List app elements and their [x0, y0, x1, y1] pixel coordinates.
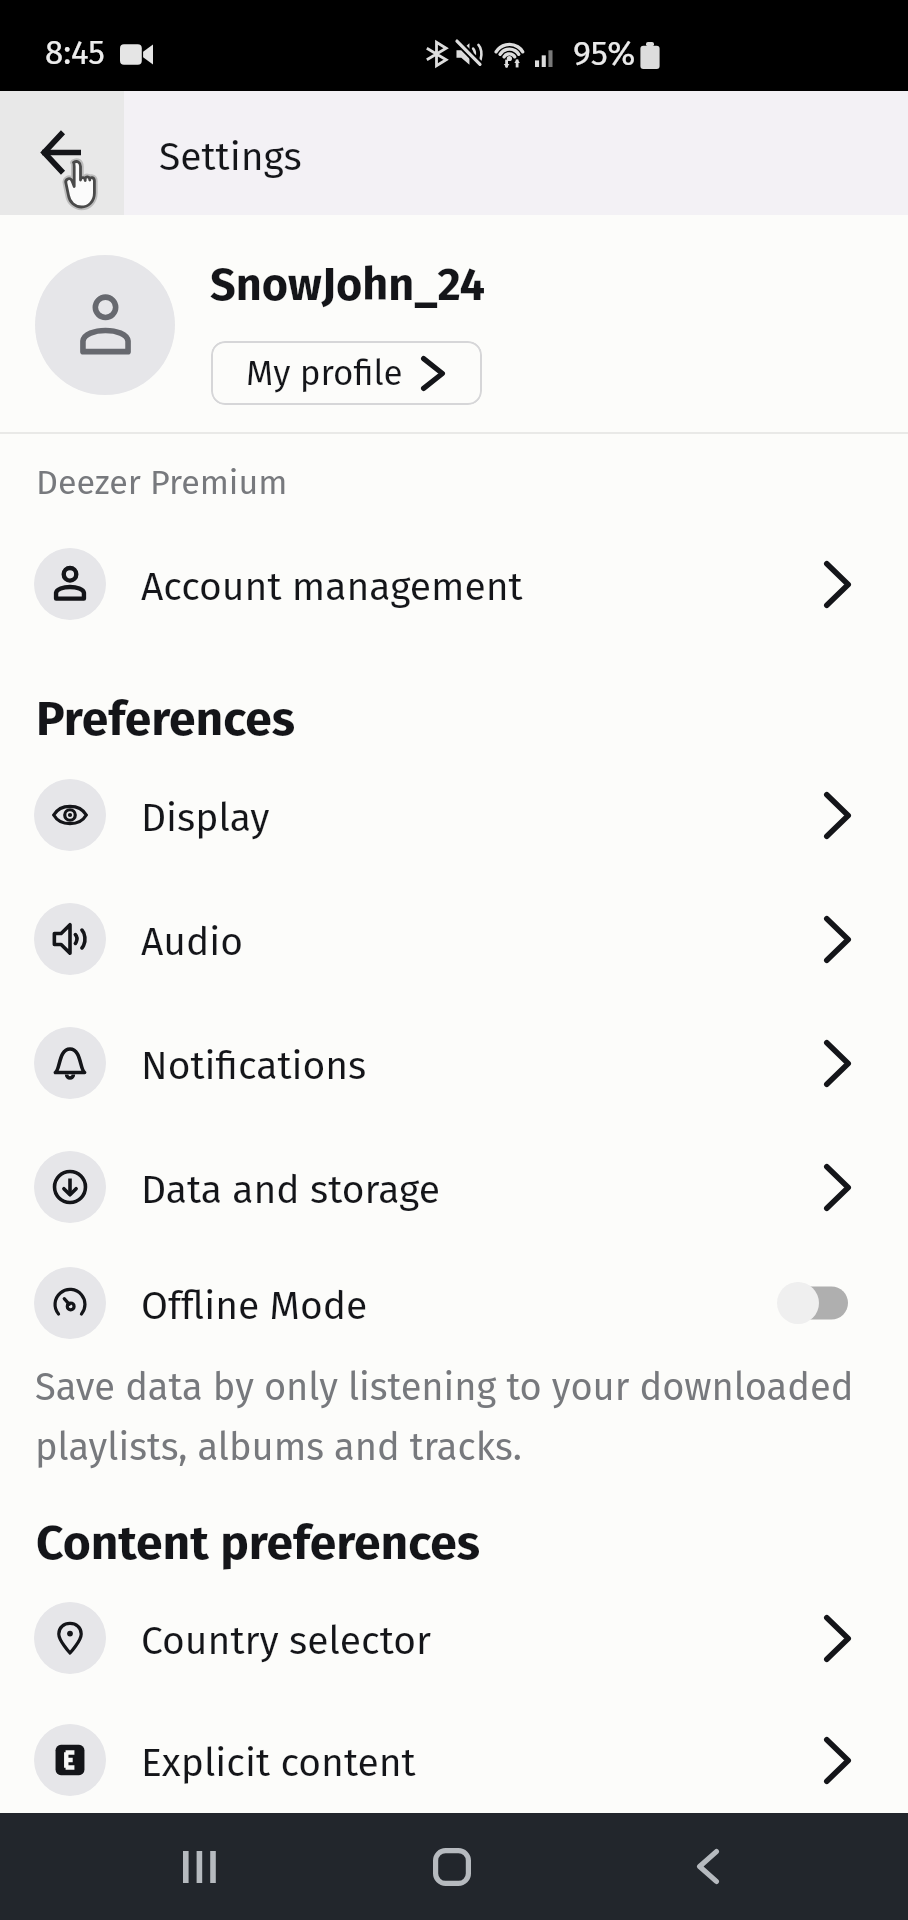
button[interactable]: Offline Mode: [0, 1241, 908, 1365]
staticText: Notifications: [141, 1043, 367, 1090]
button[interactable]: Account management: [0, 522, 908, 646]
staticText: Audio: [141, 919, 244, 966]
button[interactable]: Audio: [0, 877, 908, 1001]
button[interactable]: My profile: [211, 341, 482, 405]
button[interactable]: Display: [0, 753, 908, 877]
staticText: Content preferences: [36, 1514, 480, 1572]
staticText: 95%: [573, 33, 636, 74]
button[interactable]: Explicit content: [0, 1698, 908, 1822]
staticText: My profile: [246, 352, 403, 394]
staticText: Preferences: [36, 690, 295, 748]
staticText: Account management: [141, 564, 523, 611]
button[interactable]: Notifications: [0, 1001, 908, 1125]
staticText: Offline Mode: [141, 1283, 368, 1330]
staticText: Display: [141, 795, 270, 842]
staticText: Save data by only listening to your down…: [35, 1364, 854, 1470]
staticText: Deezer Premium: [36, 462, 288, 503]
staticText: Data and storage: [141, 1167, 440, 1214]
button[interactable]: Offline Mode toggle: [770, 1275, 858, 1331]
button[interactable]: Back: [652, 1813, 764, 1920]
staticText: 8:45: [45, 33, 105, 73]
button[interactable]: Data and storage: [0, 1125, 908, 1249]
button[interactable]: Home: [396, 1813, 508, 1920]
button[interactable]: Back: [0, 91, 124, 215]
button[interactable]: SnowJohn_24: [0, 215, 908, 432]
staticText: Explicit content: [141, 1740, 416, 1787]
staticText: Country selector: [141, 1618, 431, 1665]
staticText: Settings: [159, 134, 302, 181]
button[interactable]: Country selector: [0, 1576, 908, 1700]
staticText: SnowJohn_24: [210, 258, 485, 312]
button[interactable]: Recent apps: [144, 1813, 256, 1920]
